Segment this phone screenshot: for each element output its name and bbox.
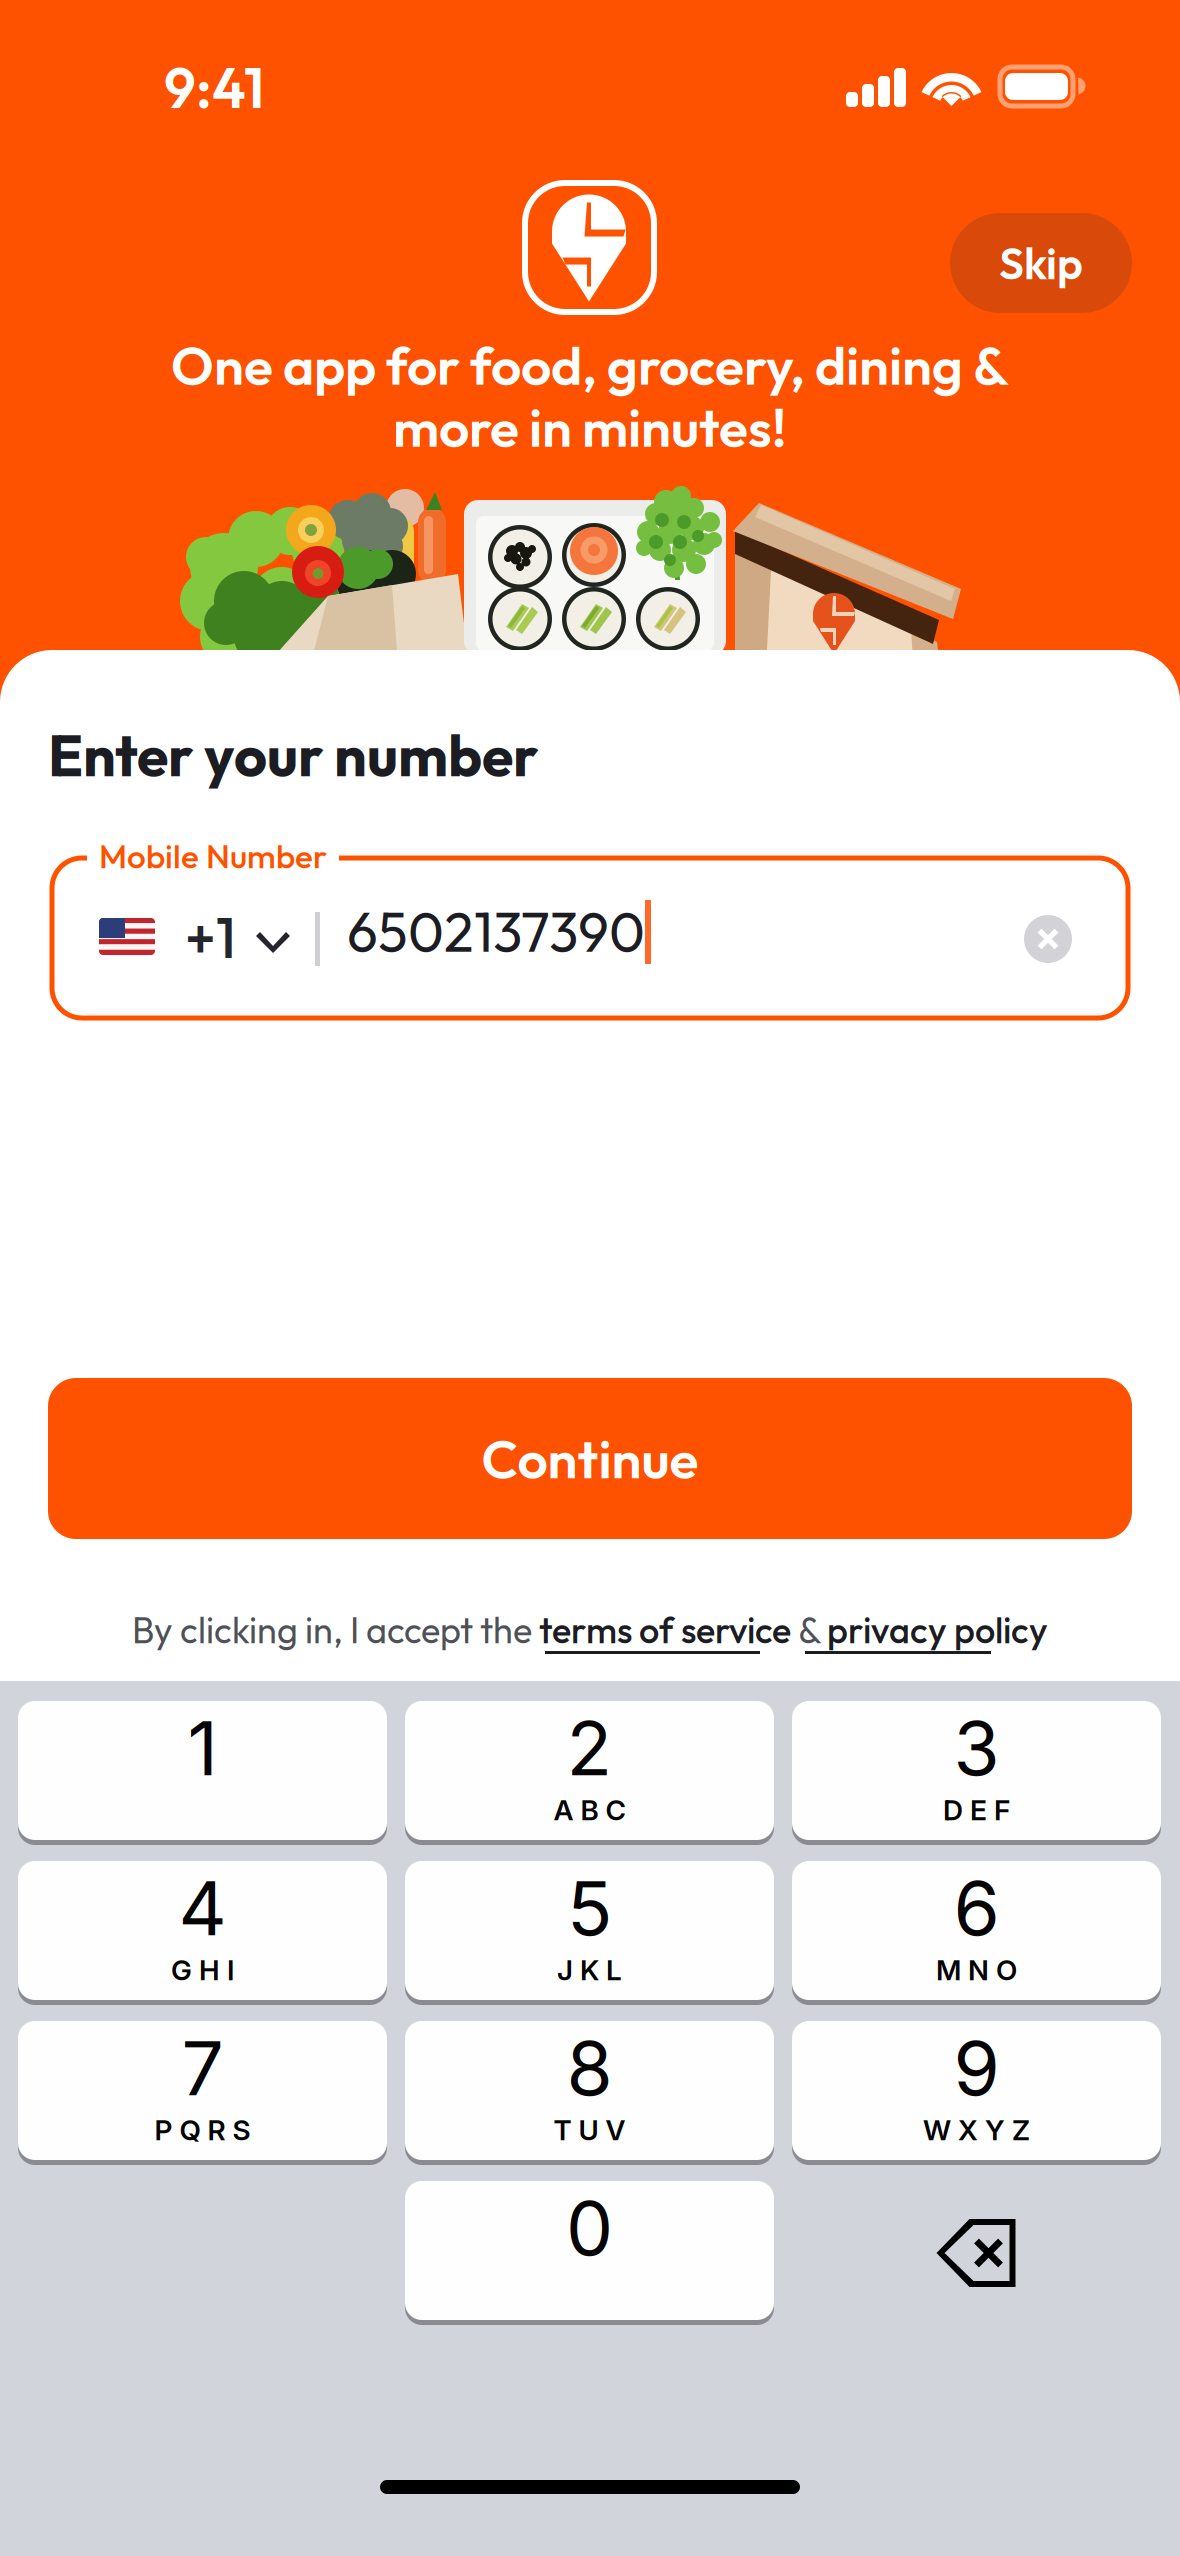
staticText: M N O (936, 1953, 1017, 1987)
staticText: & (791, 1607, 827, 1653)
staticText: Continue (481, 1425, 698, 1492)
staticText: A B C (553, 1793, 625, 1827)
staticText: P Q R S (154, 2113, 250, 2147)
staticText: 3 (953, 1703, 999, 1793)
button[interactable]: 7 (18, 2021, 387, 2165)
staticText: 8 (566, 2023, 612, 2113)
staticText: 0 (566, 2183, 613, 2273)
staticText: T U V (553, 2113, 625, 2147)
button[interactable]: 2 (405, 1701, 774, 1845)
staticText: One app for food, grocery, dining & (171, 331, 1009, 399)
button[interactable]: Delete (792, 2181, 1161, 2325)
button[interactable]: 9 (792, 2021, 1161, 2165)
staticText: G H I (171, 1953, 234, 1987)
staticText: 9 (953, 2023, 999, 2113)
button[interactable]: Skip (950, 213, 1132, 313)
button[interactable]: 0 (405, 2181, 774, 2325)
staticText: 9:41 (164, 52, 265, 123)
staticText: 5 (567, 1863, 612, 1953)
staticText: Skip (999, 235, 1083, 291)
staticText: Mobile Number (99, 835, 327, 877)
staticText: J K L (557, 1953, 622, 1987)
staticText: 6 (953, 1863, 999, 1953)
staticText: +1 (185, 902, 236, 973)
staticText: terms of service (539, 1607, 791, 1653)
staticText: 4 (178, 1863, 226, 1953)
staticText: 2 (566, 1703, 612, 1793)
button[interactable]: 3 (792, 1701, 1161, 1845)
staticText: 6502137390 (347, 897, 645, 966)
button[interactable]: 1 (18, 1701, 387, 1845)
button[interactable]: Continue (48, 1378, 1132, 1539)
button[interactable]: 6 (792, 1861, 1161, 2005)
button[interactable]: privacy policy (827, 1607, 1048, 1653)
button[interactable]: 5 (405, 1861, 774, 2005)
button[interactable]: 8 (405, 2021, 774, 2165)
button[interactable]: Clear (1024, 915, 1072, 963)
button[interactable]: terms of service (539, 1607, 791, 1653)
staticText: By clicking in, I accept the (132, 1607, 539, 1653)
button[interactable]: 4 (18, 1861, 387, 2005)
staticText: Enter your number (48, 719, 538, 791)
staticText: D E F (943, 1793, 1010, 1827)
staticText: 7 (181, 2023, 223, 2113)
staticText: privacy policy (827, 1607, 1048, 1653)
staticText: more in minutes! (393, 393, 787, 461)
staticText: W X Y Z (923, 2113, 1030, 2147)
staticText: 1 (187, 1703, 217, 1793)
